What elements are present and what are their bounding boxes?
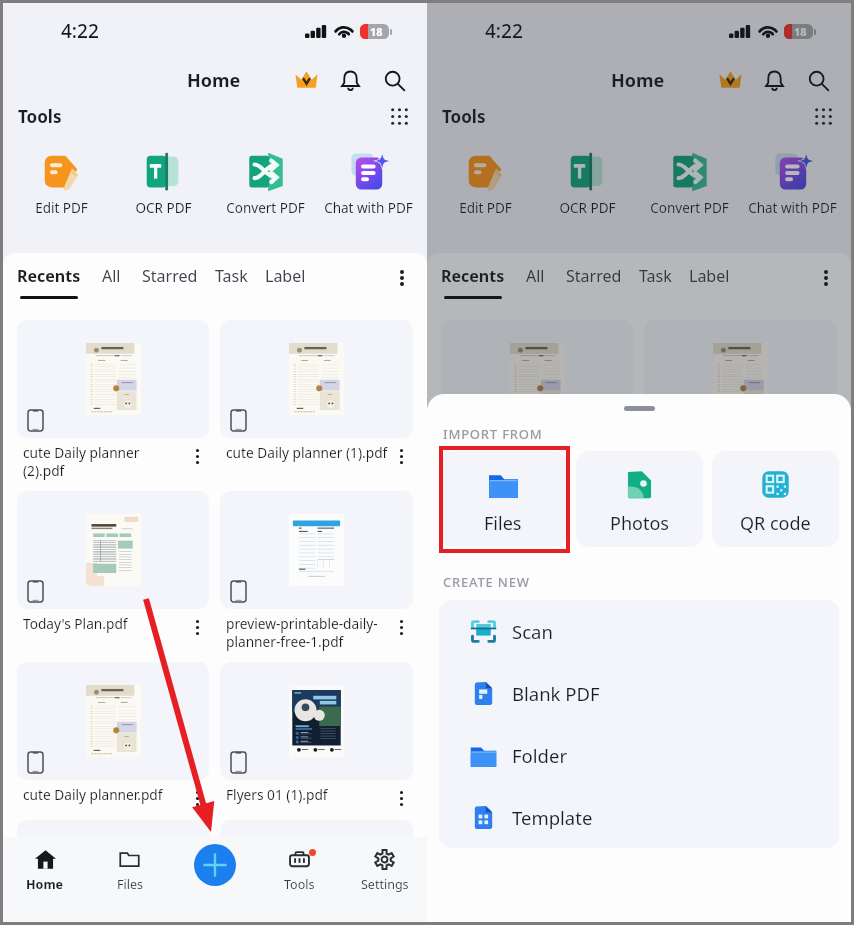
button[interactable]: All tools [809,102,837,130]
staticText: Photos [610,511,669,536]
button[interactable]: cute Daily planner (1).pdf [644,320,837,467]
button[interactable]: Scan [439,600,839,662]
staticText: 4:22 [61,18,99,44]
staticText: cute Daily planner (1).pdf [650,443,821,462]
button[interactable]: Label [265,265,306,287]
button[interactable]: Today's Plan.pdf [441,491,633,638]
staticText: Settings [361,876,409,893]
button[interactable]: Home [3,837,87,922]
button[interactable]: Premium [288,62,324,98]
staticText: OCR PDF [559,199,616,217]
button[interactable]: File options [813,444,837,468]
staticText: Blank PDF [512,681,600,706]
staticText: OCR PDF [135,199,192,217]
staticText: Convert PDF [650,199,729,217]
button[interactable]: Premium [712,62,748,98]
staticText: cute Daily planner (2).pdf [23,443,178,480]
staticText: Home [187,68,241,93]
staticText: QR code [740,511,811,536]
button[interactable]: Today's Plan.pdf [17,491,209,638]
button[interactable]: Edit PDF [434,150,536,217]
button[interactable]: More options [387,263,417,293]
staticText: Today's Plan.pdf [447,614,602,633]
button[interactable]: File options [389,444,413,468]
staticText: 18 [370,24,383,39]
staticText: Files [484,511,522,536]
button[interactable]: OCR PDF [536,150,638,217]
staticText: Tools [18,105,62,128]
staticText: Tools [284,876,315,893]
button[interactable]: Flyers 01 (1).pdf [220,662,413,809]
button[interactable]: QR code [712,451,839,547]
button[interactable]: cute Daily planner.pdf [17,662,209,809]
staticText: Chat with PDF [748,199,837,217]
button[interactable]: preview-printable-daily-planner-free-1.p… [220,491,413,651]
button[interactable]: Folder [439,724,839,786]
button[interactable]: Photos [576,451,703,547]
button[interactable]: Blank PDF [439,662,839,724]
staticText: Files [117,876,143,893]
staticText: IMPORT FROM [443,425,543,443]
button[interactable]: Search [800,62,836,98]
staticText: cute Daily planner (2).pdf [447,443,602,480]
button[interactable]: Notifications [756,62,792,98]
button[interactable]: Settings [342,837,427,922]
button[interactable]: Convert PDF [638,150,741,217]
button[interactable]: All tools [385,102,413,130]
button[interactable]: Search [376,62,412,98]
staticText: CREATE NEW [443,573,530,591]
button[interactable]: Create new [194,844,236,886]
staticText: 18 [794,24,807,39]
staticText: cute Daily planner.pdf [23,785,178,804]
button[interactable]: Recents [17,265,81,287]
button[interactable]: Recents [441,265,505,287]
button[interactable]: Chat with PDF [741,150,844,217]
button[interactable]: Starred [566,265,622,287]
button[interactable]: Starred [142,265,198,287]
button[interactable]: Task [639,265,672,287]
staticText: Template [512,805,593,830]
staticText: Folder [512,743,568,768]
button[interactable]: Template [439,786,839,848]
button[interactable]: Tools [257,837,342,922]
staticText: Chat with PDF [324,199,413,217]
button[interactable]: More options [811,263,841,293]
button[interactable]: OCR PDF [112,150,214,217]
staticText: Today's Plan.pdf [23,614,178,633]
staticText: Flyers 01 (1).pdf [226,785,382,804]
button[interactable]: File options [185,786,209,810]
button[interactable]: File options [185,444,209,468]
button[interactable]: All [102,265,121,287]
button[interactable]: cute Daily planner (2).pdf [441,320,633,480]
button[interactable]: Files [439,451,567,547]
button[interactable]: Edit PDF [10,150,112,217]
staticText: Scan [512,619,553,644]
button[interactable]: File options [609,444,633,468]
button[interactable]: Task [215,265,248,287]
button[interactable]: File options [389,786,413,810]
button[interactable]: Label [689,265,730,287]
staticText: Edit PDF [459,199,512,217]
staticText: Convert PDF [226,199,305,217]
staticText: Tools [442,105,486,128]
button[interactable]: cute Daily planner (2).pdf [17,320,209,480]
button[interactable]: cute Daily planner.pdf [441,662,633,809]
button[interactable]: Convert PDF [214,150,317,217]
button[interactable]: Chat with PDF [317,150,420,217]
button[interactable]: cute Daily planner (1).pdf [220,320,413,467]
button[interactable]: Files [87,837,172,922]
staticText: Edit PDF [35,199,88,217]
button[interactable]: File options [185,615,209,639]
button[interactable]: Notifications [332,62,368,98]
button[interactable]: preview-printable-daily-planner-free-1.p… [644,491,837,651]
button[interactable]: File options [389,615,413,639]
button[interactable]: All [526,265,545,287]
